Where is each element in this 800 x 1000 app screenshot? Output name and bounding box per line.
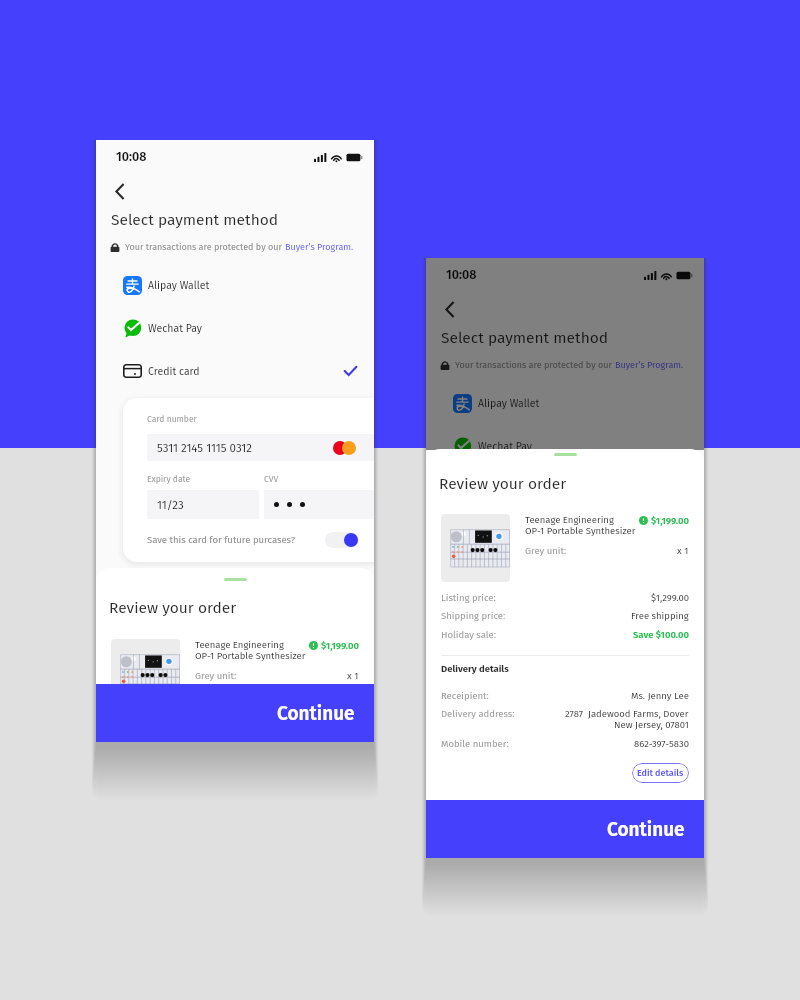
staticText: Grey unit: xyxy=(195,670,347,681)
staticText: Select payment method xyxy=(441,329,609,348)
staticText: Buyer’s Program. xyxy=(285,242,354,253)
staticText: Shipping price: xyxy=(441,610,631,621)
staticText: Continue xyxy=(277,702,355,725)
staticText: Credit card xyxy=(148,365,344,378)
button[interactable]: Back xyxy=(107,178,133,204)
staticText: 10:08 xyxy=(446,267,477,282)
staticText: Wechat Pay xyxy=(478,440,687,453)
staticText: Grey unit: xyxy=(525,545,677,556)
button[interactable]: Continue xyxy=(96,684,374,742)
staticText: $1,199.00 xyxy=(651,515,689,526)
staticText: Continue xyxy=(607,818,685,841)
staticText: Alipay Wallet xyxy=(148,279,357,292)
staticText: Save this card for future purcases? xyxy=(147,534,296,545)
staticText: 862-397-5830 xyxy=(634,738,689,749)
staticText: New Jersey, 07801 xyxy=(614,719,689,730)
staticText: Buyer’s Program. xyxy=(615,360,684,371)
staticText: Delivery address: xyxy=(441,708,565,719)
staticText: $1,299.00 xyxy=(651,592,689,603)
staticText: CVV xyxy=(264,474,279,484)
staticText: OP-1 Portable Synthesizer xyxy=(525,525,636,536)
staticText: Holiday sale: xyxy=(441,629,633,640)
staticText: x 1 xyxy=(677,545,689,556)
staticText: Expiry date xyxy=(147,474,191,484)
staticText: Alipay Wallet xyxy=(478,397,687,410)
staticText: Review your order xyxy=(109,599,237,618)
staticText: 5311 2145 1115 0312 xyxy=(157,441,253,455)
staticText: OP-1 Portable Synthesizer xyxy=(195,650,306,661)
staticText: Delivery details xyxy=(441,663,509,674)
staticText: 10:08 xyxy=(116,149,147,164)
staticText: Review your order xyxy=(439,475,567,494)
staticText: x 1 xyxy=(347,670,359,681)
staticText: Free shipping xyxy=(631,610,689,621)
staticText: Teenage Engineering xyxy=(525,514,614,525)
staticText: Ms. Jenny Lee xyxy=(631,690,689,701)
staticText: 11/23 xyxy=(157,498,184,512)
staticText: Select payment method xyxy=(111,211,279,230)
staticText: Receipient: xyxy=(441,690,631,701)
staticText: Your transactions are protected by our xyxy=(125,242,285,253)
button[interactable]: Continue xyxy=(426,800,704,858)
staticText: 2787 Jadewood Farms, Dover xyxy=(565,708,689,719)
button[interactable]: Wechat Pay xyxy=(426,426,704,466)
staticText: Card number xyxy=(147,414,197,424)
staticText: Mobile number: xyxy=(441,738,634,749)
staticText: Your transactions are protected by our xyxy=(455,360,615,371)
button[interactable] xyxy=(325,532,359,548)
button[interactable]: Wechat Pay xyxy=(96,308,374,348)
staticText: $1,199.00 xyxy=(321,640,359,651)
button[interactable]: Alipay Wallet xyxy=(96,265,374,305)
button[interactable]: Credit card xyxy=(96,351,374,391)
staticText: Teenage Engineering xyxy=(195,639,284,650)
button[interactable]: Alipay Wallet xyxy=(426,383,704,423)
staticText: Save $100.00 xyxy=(633,629,689,640)
button[interactable]: Edit details xyxy=(632,763,689,783)
staticText: Edit details xyxy=(637,768,684,779)
button[interactable]: Back xyxy=(437,296,463,322)
staticText: Wechat Pay xyxy=(148,322,357,335)
staticText: Listing price: xyxy=(441,592,651,603)
